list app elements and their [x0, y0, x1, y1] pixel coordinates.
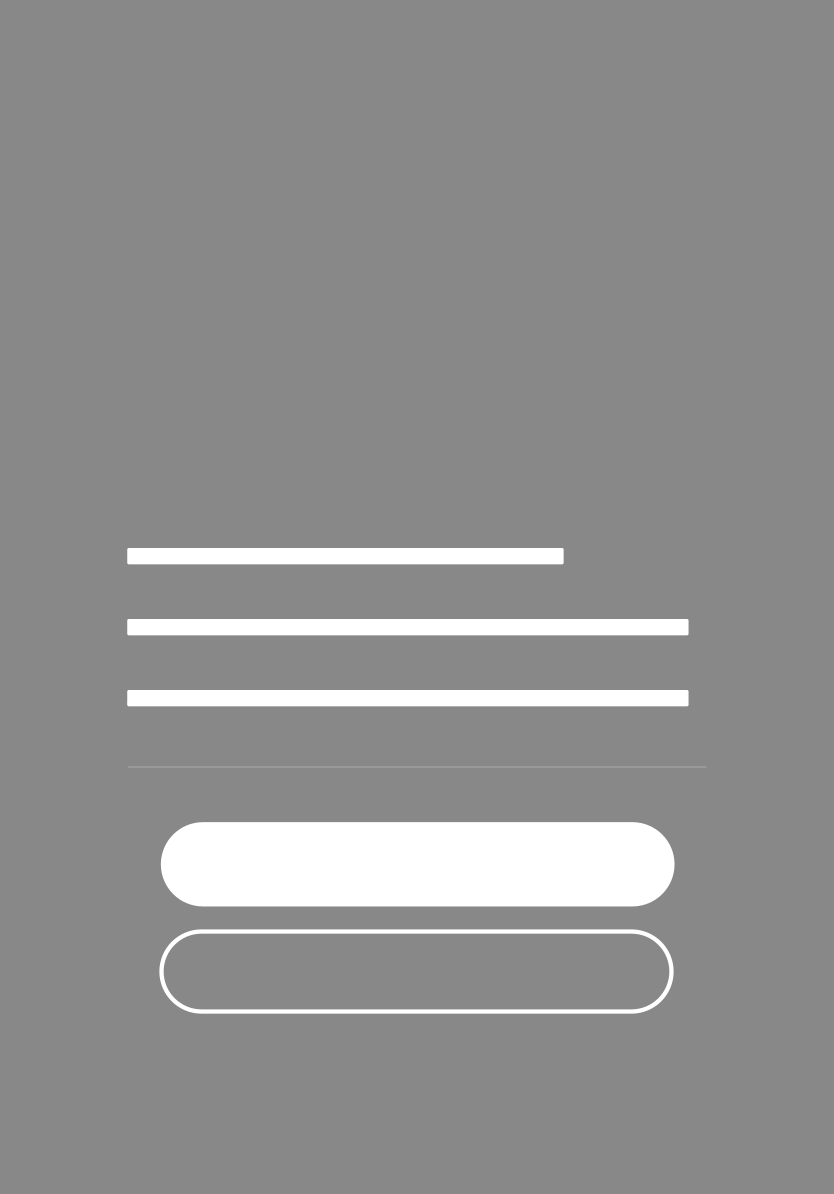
- staticText: Our archives and all other saved files s…: [127, 616, 689, 638]
- button[interactable]: Continue: [161, 822, 674, 906]
- staticText: All of this can be altered at a later ti…: [127, 687, 689, 709]
- staticText: Welcome back. Let us restore all of it f…: [136, 545, 555, 567]
- button[interactable]: Not now: [159, 929, 674, 1014]
